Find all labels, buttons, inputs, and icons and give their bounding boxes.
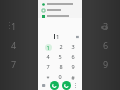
staticText: 7 [11,58,17,70]
button[interactable] [40,13,82,18]
staticText: 1 [11,20,17,32]
button[interactable]: Video call [41,82,48,89]
button[interactable]: Call SIM 1 [50,81,59,90]
staticText: 6 [71,53,75,60]
staticText: 5 [58,53,62,60]
staticText: 3 [103,20,109,32]
staticText: 7 [46,63,50,70]
button[interactable]: 8 [54,63,66,71]
staticText: 1 [46,44,50,51]
staticText: 1 [56,33,60,41]
staticText: 4 [11,39,17,51]
button[interactable]: 5 [54,53,66,61]
button[interactable] [40,7,82,12]
staticText: 3 [71,43,75,50]
staticText: 6 [103,39,109,51]
button[interactable]: 3 [67,43,79,51]
button[interactable]: 2 [54,43,66,51]
staticText: 2 [59,43,63,50]
button[interactable]: * [42,73,54,81]
staticText: 9 [103,58,109,70]
button[interactable]: More options [72,82,79,89]
button[interactable] [40,1,82,6]
button[interactable]: 9 [67,63,79,71]
button[interactable]: 1 [42,43,54,51]
staticText: 4 [46,53,50,60]
button[interactable]: Call SIM 2 [62,81,71,90]
staticText: * [46,74,50,81]
button[interactable]: Backspace [74,34,79,39]
staticText: 9 [71,63,75,70]
staticText: 0 [58,73,62,80]
staticText: # [71,74,75,81]
button[interactable]: 0 [54,73,66,81]
staticText: 8 [59,63,63,70]
button[interactable]: 4 [42,53,54,61]
button[interactable]: 6 [67,53,79,61]
button[interactable]: 7 [42,63,54,71]
button[interactable]: # [67,73,79,81]
